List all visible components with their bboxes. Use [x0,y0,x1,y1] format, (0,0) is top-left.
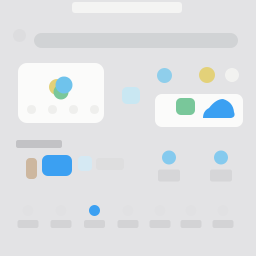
button[interactable] [0,0,256,256]
button[interactable] [0,0,256,256]
button[interactable] [0,0,256,256]
button[interactable] [0,0,256,256]
button[interactable] [0,0,256,256]
button[interactable] [0,0,256,256]
button[interactable] [0,0,256,256]
button[interactable] [0,0,256,256]
button[interactable] [0,0,256,256]
button[interactable] [0,0,256,256]
button[interactable] [0,0,256,256]
button[interactable] [0,0,256,256]
button[interactable] [0,0,256,256]
